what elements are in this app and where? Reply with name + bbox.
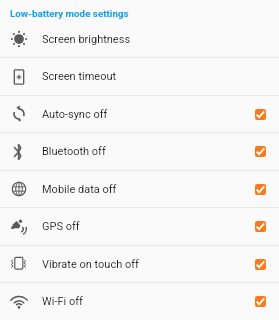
- button[interactable]: Auto-sync off: [0, 96, 279, 133]
- staticText: Screen timeout: [42, 70, 242, 83]
- button[interactable]: Screen brightness: [0, 21, 279, 58]
- button[interactable]: Toggle Mobile data off: [242, 171, 279, 207]
- staticText: Screen brightness: [42, 33, 242, 46]
- button[interactable]: Wi-Fi off: [0, 283, 279, 320]
- staticText: GPS off: [42, 220, 242, 233]
- staticText: Mobile data off: [42, 183, 242, 196]
- staticText: Wi-Fi off: [42, 295, 242, 308]
- button[interactable]: Toggle Vibrate on touch off: [242, 246, 279, 282]
- staticText: Auto-sync off: [42, 108, 242, 121]
- staticText: Low-battery mode settings: [10, 8, 129, 19]
- button[interactable]: Bluetooth off: [0, 133, 279, 171]
- button[interactable]: Toggle Bluetooth off: [242, 133, 279, 170]
- button[interactable]: Vibrate on touch off: [0, 246, 279, 283]
- button[interactable]: Mobile data off: [0, 171, 279, 208]
- staticText: Bluetooth off: [42, 145, 242, 158]
- button[interactable]: Toggle Auto-sync off: [242, 96, 279, 132]
- button[interactable]: GPS off: [0, 208, 279, 246]
- button[interactable]: Toggle Wi-Fi off: [242, 283, 279, 320]
- button[interactable]: Screen timeout: [0, 58, 279, 96]
- staticText: Vibrate on touch off: [42, 258, 242, 271]
- button[interactable]: Toggle GPS off: [242, 208, 279, 245]
